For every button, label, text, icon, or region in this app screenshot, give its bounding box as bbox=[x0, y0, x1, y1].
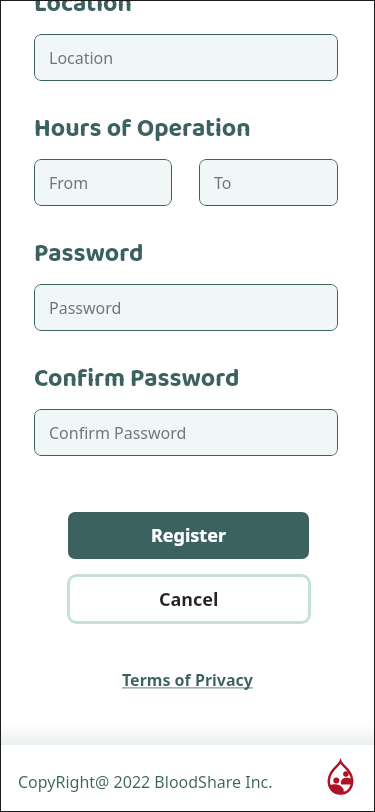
button[interactable]: Terms of Privacy bbox=[122, 669, 253, 691]
staticText: Location bbox=[34, 0, 132, 24]
button[interactable]: From bbox=[34, 159, 172, 206]
staticText: CopyRight@ 2022 BloodShare Inc. bbox=[18, 771, 273, 793]
button[interactable]: Confirm Password bbox=[34, 409, 338, 456]
button[interactable]: Cancel bbox=[67, 574, 311, 624]
staticText: Confirm Password bbox=[34, 359, 240, 399]
staticText: To bbox=[214, 172, 232, 194]
button[interactable]: To bbox=[199, 159, 338, 206]
other: BloodShare logo bbox=[328, 761, 353, 796]
staticText: Hours of Operation bbox=[34, 109, 251, 149]
button[interactable]: Location bbox=[34, 34, 338, 81]
button[interactable]: Register bbox=[68, 512, 309, 559]
button[interactable]: Password bbox=[34, 284, 338, 331]
staticText: Register bbox=[151, 523, 226, 548]
staticText: Password bbox=[34, 234, 144, 274]
staticText: Location bbox=[49, 47, 114, 69]
staticText: Confirm Password bbox=[49, 422, 187, 444]
staticText: Password bbox=[49, 297, 122, 319]
staticText: From bbox=[49, 172, 89, 194]
staticText: Cancel bbox=[159, 587, 219, 612]
